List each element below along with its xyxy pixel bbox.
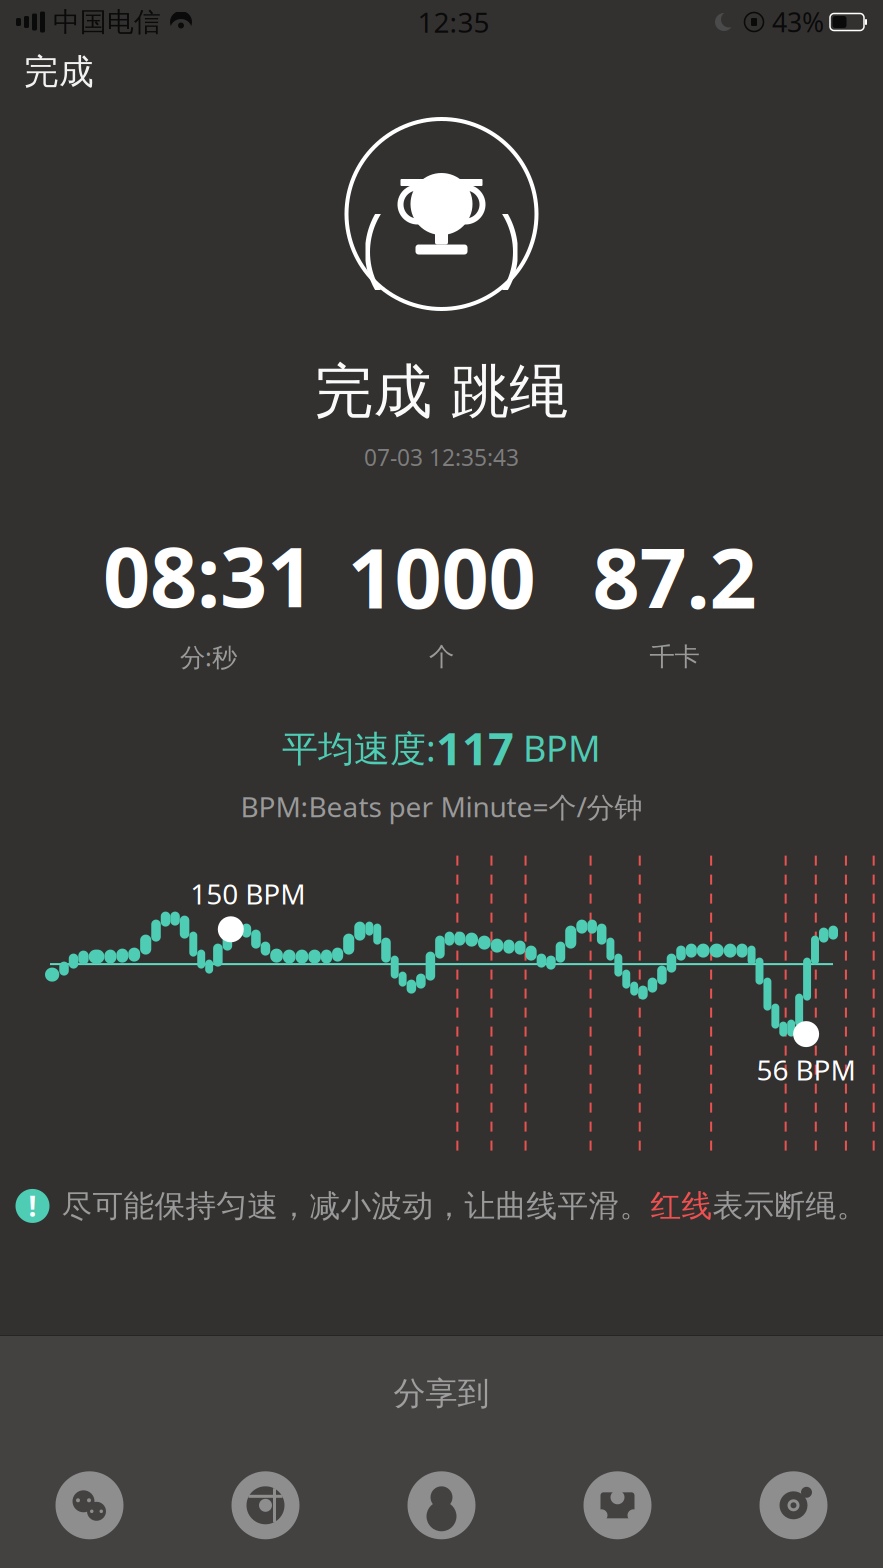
staticText: 150 BPM [190, 875, 305, 912]
button[interactable]: 收藏 [529, 1459, 705, 1551]
staticText: 117 [436, 718, 514, 778]
staticText: 08:31 [103, 520, 314, 630]
staticText: 07-03 12:35:43 [364, 442, 519, 472]
button[interactable]: 微博 [705, 1459, 881, 1551]
staticText: 中国电信 [53, 6, 161, 38]
staticText: 个 [429, 641, 454, 672]
staticText: 12:35 [417, 3, 489, 41]
staticText: 1000 [347, 521, 535, 631]
staticText: 56 BPM [757, 1051, 856, 1088]
staticText: 完成 [24, 51, 94, 93]
staticText: 分享到 [393, 1374, 489, 1413]
staticText: 87.2 [592, 521, 756, 631]
staticText: 千卡 [649, 641, 699, 672]
staticText: ! [28, 1187, 36, 1225]
button[interactable]: 完成 [0, 41, 118, 103]
button[interactable]: 微信 [1, 1459, 177, 1551]
button[interactable]: 朋友圈 [177, 1459, 353, 1551]
button[interactable]: QQ [353, 1459, 529, 1551]
staticText: 平均速度: [282, 724, 436, 772]
staticText: BPM [514, 724, 601, 772]
staticText: 完成 跳绳 [314, 356, 568, 428]
staticText: 分:秒 [180, 640, 237, 673]
staticText: 表示断绳。 [712, 1187, 867, 1225]
staticText: 43% [772, 4, 824, 40]
staticText: 红线 [650, 1187, 712, 1225]
staticText: 尽可能保持匀速，减小波动，让曲线平滑。 [61, 1187, 650, 1225]
staticText: BPM:Beats per Minute=个/分钟 [240, 788, 642, 825]
